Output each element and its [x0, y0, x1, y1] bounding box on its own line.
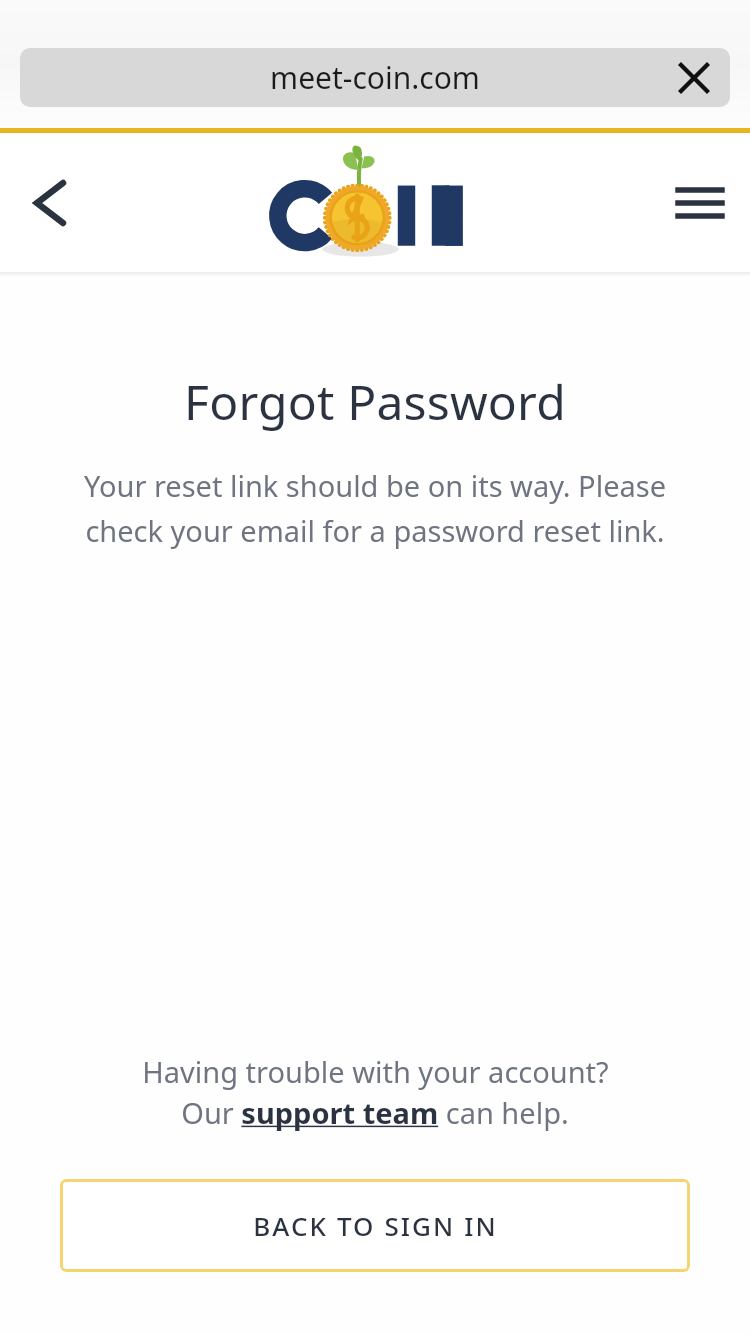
button[interactable]: Our support team can help. — [181, 1093, 569, 1132]
button[interactable] — [268, 148, 478, 258]
button[interactable]: Back — [16, 172, 78, 234]
button[interactable]: Close tab — [672, 56, 716, 100]
staticText: Having trouble with your account? — [142, 1052, 609, 1091]
button[interactable]: meet-coin.com — [20, 48, 730, 107]
button[interactable]: Menu — [670, 173, 730, 233]
staticText: Your reset link should be on its way. Pl… — [52, 466, 698, 551]
button[interactable]: BACK TO SIGN IN — [60, 1179, 690, 1272]
staticText: Forgot Password — [184, 369, 566, 434]
staticText: meet-coin.com — [270, 57, 480, 98]
staticText: BACK TO SIGN IN — [253, 1208, 498, 1243]
